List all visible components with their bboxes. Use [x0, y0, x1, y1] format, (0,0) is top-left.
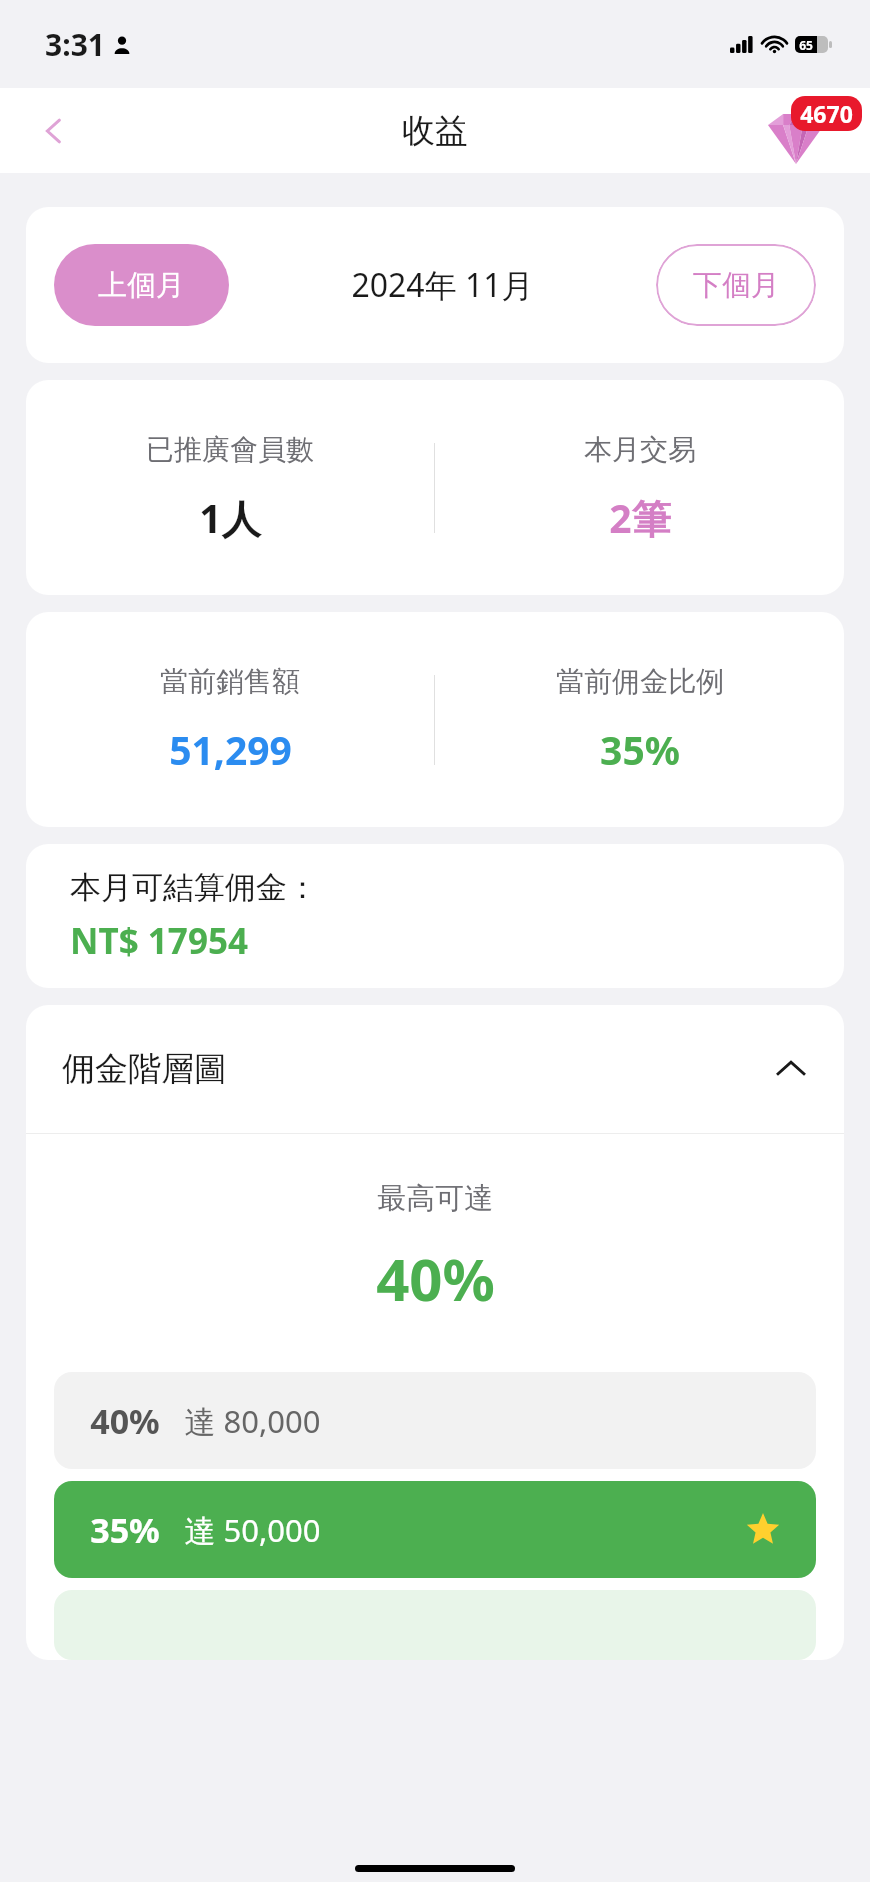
staticText: 4670 [800, 98, 853, 129]
staticText: 達 80,000 [184, 1400, 321, 1442]
staticText: 40% [376, 1239, 495, 1318]
staticText: 最高可達 [377, 1180, 493, 1217]
staticText: 達 50,000 [184, 1509, 321, 1551]
staticText: 2筆 [609, 491, 671, 544]
other: Collapse [774, 1052, 808, 1086]
staticText: 本月交易 [584, 432, 696, 467]
staticText: 35% [600, 723, 680, 776]
staticText: NT$ 17954 [70, 917, 248, 965]
button[interactable]: 下個月 [656, 244, 816, 326]
button[interactable]: 40% [54, 1372, 816, 1469]
staticText: 已推廣會員數 [146, 432, 314, 467]
staticText: 65 [799, 37, 813, 53]
button[interactable]: 35% [54, 1481, 816, 1578]
staticText: 當前銷售額 [160, 664, 300, 699]
button[interactable]: Back [26, 103, 82, 159]
button[interactable]: Points [762, 96, 848, 166]
staticText: 2024年 11月 [351, 263, 534, 307]
staticText: 51,299 [169, 723, 292, 776]
staticText: 40% [90, 1398, 160, 1444]
button[interactable]: 佣金階層圖 [26, 1005, 844, 1133]
staticText: 上個月 [98, 267, 185, 304]
staticText: 35% [90, 1507, 160, 1553]
staticText: 收益 [402, 110, 468, 152]
staticText: 佣金階層圖 [62, 1048, 227, 1090]
staticText: 1人 [199, 491, 261, 544]
staticText: 當前佣金比例 [556, 664, 724, 699]
staticText: 下個月 [693, 267, 780, 304]
button[interactable]: 上個月 [54, 244, 229, 326]
staticText: 本月可結算佣金： [70, 868, 318, 907]
staticText: 3:31 [45, 24, 105, 65]
